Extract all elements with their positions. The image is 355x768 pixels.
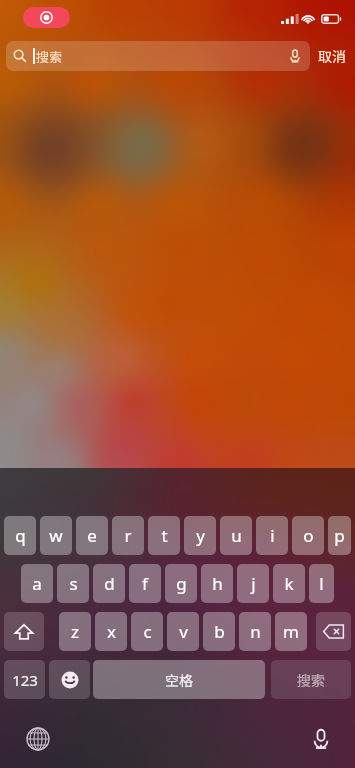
button[interactable]: h [201,564,233,603]
staticText: 空格 [165,670,193,690]
button[interactable]: Delete [316,612,351,651]
button[interactable]: 空格 [93,660,265,699]
staticText: l [319,572,324,595]
button[interactable]: 搜索 [6,41,310,71]
staticText: r [124,524,132,547]
staticText: x [107,620,116,643]
staticText: e [87,524,97,547]
button[interactable]: z [59,612,91,651]
staticText: o [303,524,314,547]
staticText: 搜索 [297,670,325,690]
button[interactable]: t [148,516,180,555]
button[interactable]: l [309,564,334,603]
button[interactable]: d [93,564,125,603]
button[interactable]: w [40,516,72,555]
staticText: v [179,620,188,643]
button[interactable]: y [184,516,216,555]
button[interactable]: Voice input [306,724,336,754]
staticText: 取消 [318,46,346,66]
staticText: w [49,524,63,547]
button[interactable]: v [167,612,199,651]
button[interactable]: q [4,516,36,555]
button[interactable]: Shift [4,612,44,651]
staticText: j [251,572,256,595]
staticText: u [231,524,242,547]
button[interactable]: f [129,564,161,603]
staticText: n [250,620,261,643]
staticText: z [71,620,79,643]
button[interactable]: b [203,612,235,651]
staticText: 123 [12,670,38,690]
button[interactable]: Emoji [49,660,90,699]
staticText: h [212,572,223,595]
button[interactable]: e [76,516,108,555]
button[interactable]: 取消 [310,46,347,66]
button[interactable]: c [131,612,163,651]
staticText: m [283,620,299,643]
staticText: f [142,572,148,595]
button[interactable]: Recording [23,7,70,28]
button[interactable]: u [220,516,252,555]
staticText: s [69,572,78,595]
button[interactable]: g [165,564,197,603]
button[interactable]: o [292,516,324,555]
button[interactable]: r [112,516,144,555]
button[interactable]: Change keyboard [23,724,53,754]
staticText: g [176,572,187,595]
button[interactable]: s [57,564,89,603]
staticText: 搜索 [36,47,63,66]
staticText: c [143,620,152,643]
button[interactable]: x [95,612,127,651]
staticText: i [270,524,275,547]
button[interactable]: 123 [4,660,45,699]
button[interactable]: p [328,516,351,555]
staticText: p [334,524,345,547]
staticText: k [284,572,294,595]
button[interactable]: 搜索 [271,660,351,699]
button[interactable]: a [21,564,53,603]
staticText: q [15,524,26,547]
button[interactable]: m [275,612,307,651]
staticText: t [161,524,168,547]
staticText: b [214,620,225,643]
button[interactable]: Voice search [284,45,306,67]
staticText: y [196,524,205,547]
button[interactable]: i [256,516,288,555]
staticText: a [32,572,42,595]
button[interactable]: k [273,564,305,603]
button[interactable]: n [239,612,271,651]
staticText: d [104,572,115,595]
button[interactable]: j [237,564,269,603]
